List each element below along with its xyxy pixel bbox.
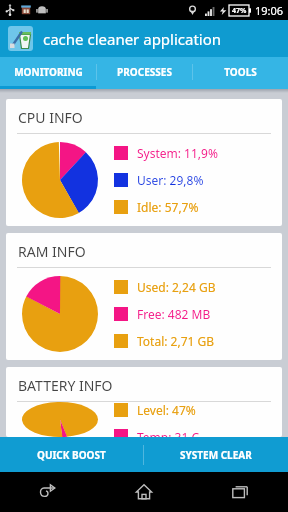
staticText: QUICK BOOST <box>37 448 106 462</box>
staticText: System: 11,9% <box>137 145 218 161</box>
staticText: Free: 482 MB <box>137 306 211 322</box>
button[interactable]: Home <box>96 472 192 512</box>
staticText: CPU INFO <box>18 108 83 127</box>
staticText: SYSTEM CLEAR <box>180 448 252 462</box>
staticText: MONITORING <box>14 65 83 79</box>
staticText: cache cleaner application <box>43 29 222 49</box>
button[interactable]: Recent apps <box>192 472 288 512</box>
button[interactable]: BATTERY INFO <box>6 367 282 437</box>
button[interactable]: RAM INFO <box>6 233 282 360</box>
staticText: User: 29,8% <box>137 172 204 188</box>
staticText: Used: 2,24 GB <box>137 279 216 295</box>
button[interactable]: SYSTEM CLEAR <box>144 437 288 472</box>
staticText: 47% <box>232 6 247 16</box>
button[interactable]: CPU INFO <box>6 99 282 226</box>
button[interactable]: Back <box>0 472 96 512</box>
button[interactable]: QUICK BOOST <box>0 437 143 472</box>
staticText: BATTERY INFO <box>18 376 113 395</box>
button[interactable]: PROCESSES <box>97 57 192 86</box>
staticText: Total: 2,71 GB <box>137 333 215 349</box>
staticText: PROCESSES <box>117 65 172 79</box>
button[interactable]: MONITORING <box>0 57 96 86</box>
staticText: Temp: 31 C <box>137 429 199 437</box>
staticText: 19:06 <box>255 3 284 18</box>
staticText: Level: 47% <box>137 402 196 418</box>
staticText: Idle: 57,7% <box>137 199 199 215</box>
button[interactable]: TOOLS <box>193 57 288 86</box>
button[interactable]: App icon <box>8 26 33 51</box>
staticText: RAM INFO <box>18 242 86 261</box>
staticText: TOOLS <box>224 65 257 79</box>
